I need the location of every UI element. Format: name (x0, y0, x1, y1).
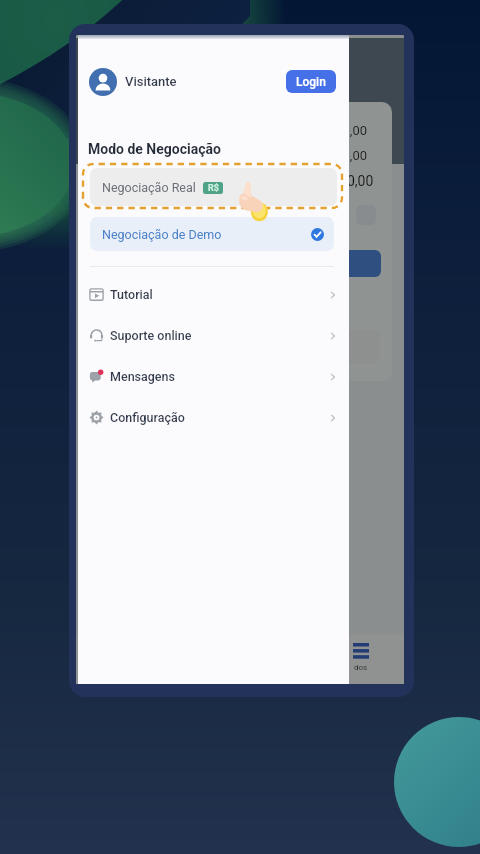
button[interactable]: Login (286, 70, 336, 93)
staticText: Suporte online (110, 328, 192, 343)
staticText: Visitante (125, 74, 177, 89)
staticText: R$ 0,00 (324, 123, 368, 138)
staticText: R$ (208, 183, 219, 194)
other: Tap here (235, 181, 271, 222)
button[interactable]: Tutorial (78, 274, 349, 315)
staticText: Modo de Negociação (88, 141, 221, 157)
staticText: dos (354, 663, 368, 672)
staticText: Login (296, 75, 326, 89)
staticText: Negociação de Demo (102, 227, 222, 242)
button[interactable]: Negociação Real (90, 168, 337, 206)
button[interactable]: Suporte online (78, 315, 349, 356)
button[interactable]: Configuração (78, 397, 349, 438)
button[interactable]: Mensagens (78, 356, 349, 397)
staticText: Configuração (110, 410, 185, 425)
staticText: Mensagens (110, 369, 175, 384)
staticText: Tutorial (110, 287, 153, 302)
staticText: Negociação Real (102, 180, 196, 195)
staticText: R$ 0,00 (327, 173, 374, 189)
staticText: R$ 0,00 (324, 148, 368, 163)
button[interactable]: Negociação de Demo (90, 217, 334, 251)
